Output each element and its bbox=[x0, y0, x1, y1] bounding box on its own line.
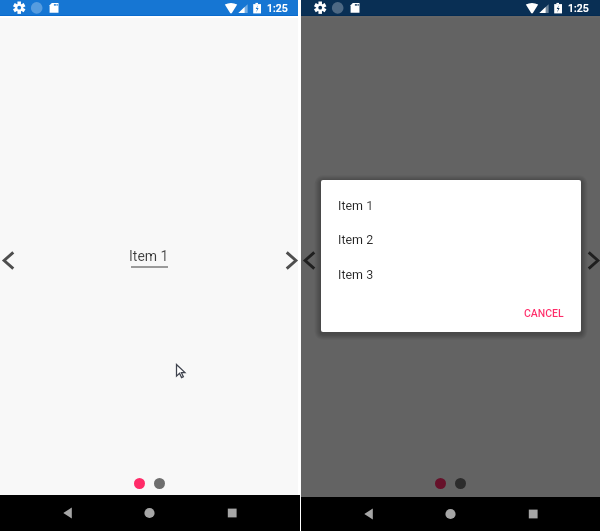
staticText: Item 2 bbox=[338, 232, 374, 247]
button[interactable]: Item 2 bbox=[321, 222, 581, 257]
button[interactable]: Recent apps bbox=[513, 497, 553, 531]
button[interactable]: Page 1 bbox=[435, 478, 446, 489]
button[interactable]: Next item bbox=[584, 239, 600, 281]
staticText: 1:25 bbox=[568, 2, 589, 14]
button[interactable] bbox=[301, 16, 600, 497]
staticText: 1:25 bbox=[267, 2, 288, 14]
button[interactable]: Recent apps bbox=[212, 495, 252, 531]
button[interactable]: Page 2 bbox=[154, 478, 165, 489]
button[interactable]: Next item bbox=[282, 239, 298, 281]
staticText: CANCEL bbox=[524, 307, 564, 319]
button[interactable]: Item 1 bbox=[321, 188, 581, 223]
staticText: Item 1 bbox=[338, 198, 374, 213]
button[interactable]: Item 3 bbox=[321, 257, 581, 292]
button[interactable]: Page 1 bbox=[134, 478, 145, 489]
button[interactable]: Back bbox=[48, 495, 88, 531]
button[interactable]: Page 2 bbox=[455, 478, 466, 489]
button[interactable]: Previous item bbox=[0, 239, 16, 281]
button[interactable]: Previous item bbox=[301, 239, 317, 281]
button[interactable]: Item 1 bbox=[129, 248, 169, 268]
staticText: Item 1 bbox=[129, 248, 169, 264]
staticText: Item 3 bbox=[338, 267, 374, 282]
button[interactable]: CANCEL bbox=[517, 301, 571, 325]
button[interactable]: Home bbox=[130, 495, 170, 531]
button[interactable]: Back bbox=[349, 497, 389, 531]
button[interactable]: Home bbox=[431, 497, 471, 531]
